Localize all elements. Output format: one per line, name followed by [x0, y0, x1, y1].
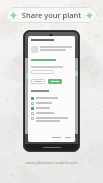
button[interactable]	[31, 70, 54, 74]
button[interactable]: Share your plant	[6, 7, 97, 23]
button[interactable]: Action	[62, 49, 65, 52]
button[interactable]	[28, 69, 75, 75]
button[interactable]	[28, 96, 75, 102]
button[interactable]	[31, 117, 72, 122]
button[interactable]	[28, 87, 75, 93]
button[interactable]	[48, 79, 62, 84]
button[interactable]	[28, 78, 75, 84]
staticText: Share your plant	[17, 10, 86, 20]
button[interactable]	[31, 97, 72, 100]
button[interactable]: Scan	[73, 71, 78, 76]
button[interactable]	[28, 114, 75, 120]
button[interactable]	[51, 135, 62, 139]
button[interactable]	[31, 102, 72, 105]
button[interactable]	[28, 105, 75, 111]
button[interactable]	[31, 79, 45, 84]
button[interactable]: Filter	[26, 73, 32, 79]
staticText: www.plantnet-mobile.com	[0, 160, 103, 166]
button[interactable]	[31, 107, 72, 110]
button[interactable]: Add plant	[71, 137, 76, 142]
button[interactable]	[64, 135, 72, 139]
button[interactable]	[28, 60, 75, 66]
button[interactable]	[31, 112, 72, 115]
